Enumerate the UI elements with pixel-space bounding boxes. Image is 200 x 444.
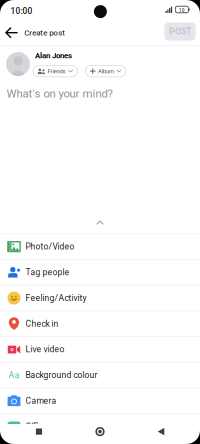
staticText: What's on your mind? bbox=[6, 87, 112, 100]
staticText: Create post bbox=[24, 28, 65, 37]
staticText: Camera bbox=[25, 396, 56, 406]
button[interactable]: Back bbox=[139, 420, 183, 444]
staticText: 10:00 bbox=[11, 6, 33, 16]
staticText: Background colour bbox=[25, 370, 97, 380]
button[interactable]: Recents bbox=[17, 420, 61, 444]
button[interactable]: Photo/Video bbox=[0, 234, 200, 260]
button[interactable]: Friends bbox=[33, 65, 77, 77]
staticText: GIF bbox=[25, 421, 38, 431]
button[interactable]: POST bbox=[164, 23, 196, 41]
button[interactable]: Check in bbox=[0, 311, 200, 337]
button[interactable]: Camera bbox=[0, 388, 200, 414]
button[interactable]: Live video bbox=[0, 337, 200, 363]
staticText: Live video bbox=[25, 344, 64, 354]
staticText: Feeling/Activity bbox=[25, 293, 86, 303]
button[interactable]: Home bbox=[78, 420, 122, 444]
staticText: Alan Jones bbox=[35, 51, 72, 60]
staticText: Check in bbox=[25, 319, 58, 329]
staticText: Tag people bbox=[25, 267, 69, 277]
button[interactable]: Album bbox=[85, 65, 126, 77]
staticText: POST bbox=[169, 26, 191, 37]
button[interactable]: Create post bbox=[24, 20, 65, 45]
staticText: Photo/Video bbox=[25, 242, 74, 252]
button[interactable]: Aa bbox=[0, 363, 200, 388]
button[interactable]: Tag people bbox=[0, 260, 200, 285]
staticText: 10 bbox=[179, 8, 185, 13]
staticText: Aa bbox=[8, 370, 19, 380]
button[interactable]: GIF bbox=[0, 414, 200, 440]
button[interactable]: Back bbox=[0, 20, 22, 45]
staticText: Album bbox=[98, 68, 114, 75]
button[interactable]: Feeling/Activity bbox=[0, 285, 200, 311]
staticText: Friends bbox=[48, 68, 66, 75]
